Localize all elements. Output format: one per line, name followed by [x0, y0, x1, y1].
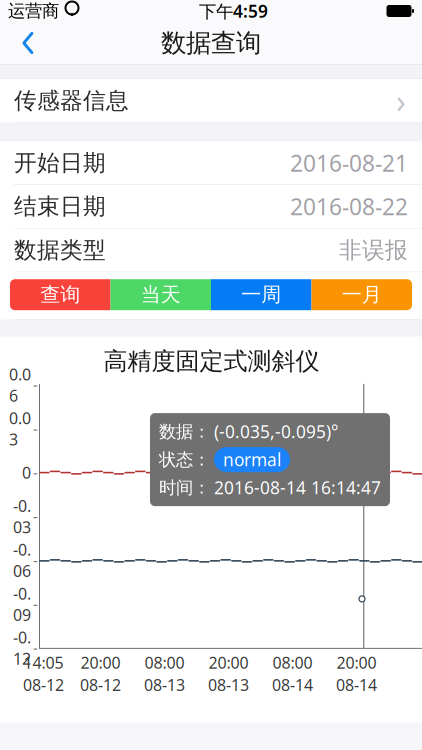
- staticText: -0.12: [13, 627, 31, 669]
- staticText: 时间：: [159, 477, 210, 498]
- staticText: 开始日期: [14, 149, 106, 177]
- staticText: 14:05: [23, 652, 63, 673]
- staticText: 08-14: [272, 674, 313, 695]
- staticText: 0.03: [9, 407, 31, 450]
- staticText: -: [33, 550, 38, 570]
- staticText: -0.06: [13, 539, 31, 581]
- staticText: 传感器信息: [14, 87, 129, 115]
- staticText: 08:00: [272, 652, 312, 673]
- staticText: 数据查询: [161, 27, 261, 58]
- staticText: -0.09: [13, 583, 31, 625]
- button[interactable]: 开始日期: [0, 141, 422, 185]
- staticText: 08:00: [144, 652, 184, 673]
- staticText: 2016-08-22: [290, 191, 408, 221]
- staticText: 高精度固定式测斜仪: [103, 346, 319, 376]
- staticText: 查询: [40, 282, 80, 307]
- staticText: 20:00: [336, 652, 376, 673]
- staticText: 20:00: [80, 652, 120, 673]
- staticText: -: [33, 507, 38, 526]
- button[interactable]: 结束日期: [0, 185, 422, 229]
- staticText: 2016-08-21: [290, 148, 408, 178]
- button[interactable]: 一月: [311, 279, 412, 310]
- button[interactable]: 数据类型: [0, 229, 422, 272]
- staticText: 数据类型: [14, 236, 106, 264]
- staticText: 一周: [241, 282, 281, 307]
- staticText: -: [33, 594, 38, 614]
- staticText: -: [33, 375, 38, 395]
- staticText: -0.03: [13, 495, 31, 538]
- staticText: 2016-08-14 16:14:47: [214, 476, 381, 499]
- staticText: (-0.035,-0.095)°: [214, 420, 338, 443]
- staticText: 20:00: [208, 652, 248, 673]
- staticText: 0: [22, 462, 31, 483]
- staticText: 数据：: [159, 421, 210, 442]
- staticText: 当天: [141, 282, 181, 307]
- staticText: 结束日期: [14, 193, 106, 220]
- button[interactable]: 一周: [211, 279, 311, 310]
- staticText: -: [33, 463, 38, 482]
- staticText: -: [33, 419, 38, 438]
- staticText: 08-13: [144, 674, 185, 695]
- staticText: 08-14: [336, 674, 377, 695]
- button[interactable]: 查询: [10, 279, 110, 310]
- staticText: normal: [223, 448, 281, 471]
- staticText: 0.06: [9, 364, 31, 406]
- staticText: 08-12: [23, 674, 64, 695]
- staticText: 08-13: [208, 674, 249, 695]
- staticText: 一月: [342, 282, 382, 307]
- button[interactable]: 返回: [8, 23, 48, 63]
- staticText: 状态：: [159, 449, 210, 470]
- staticText: 08-12: [80, 674, 121, 695]
- button[interactable]: 当天: [110, 279, 211, 310]
- staticText: -: [33, 638, 38, 658]
- staticText: ›: [396, 79, 406, 122]
- button[interactable]: 传感器信息: [0, 79, 422, 123]
- staticText: 运营商: [8, 0, 59, 22]
- staticText: 非误报: [339, 236, 408, 264]
- staticText: 下午4:59: [199, 0, 268, 22]
